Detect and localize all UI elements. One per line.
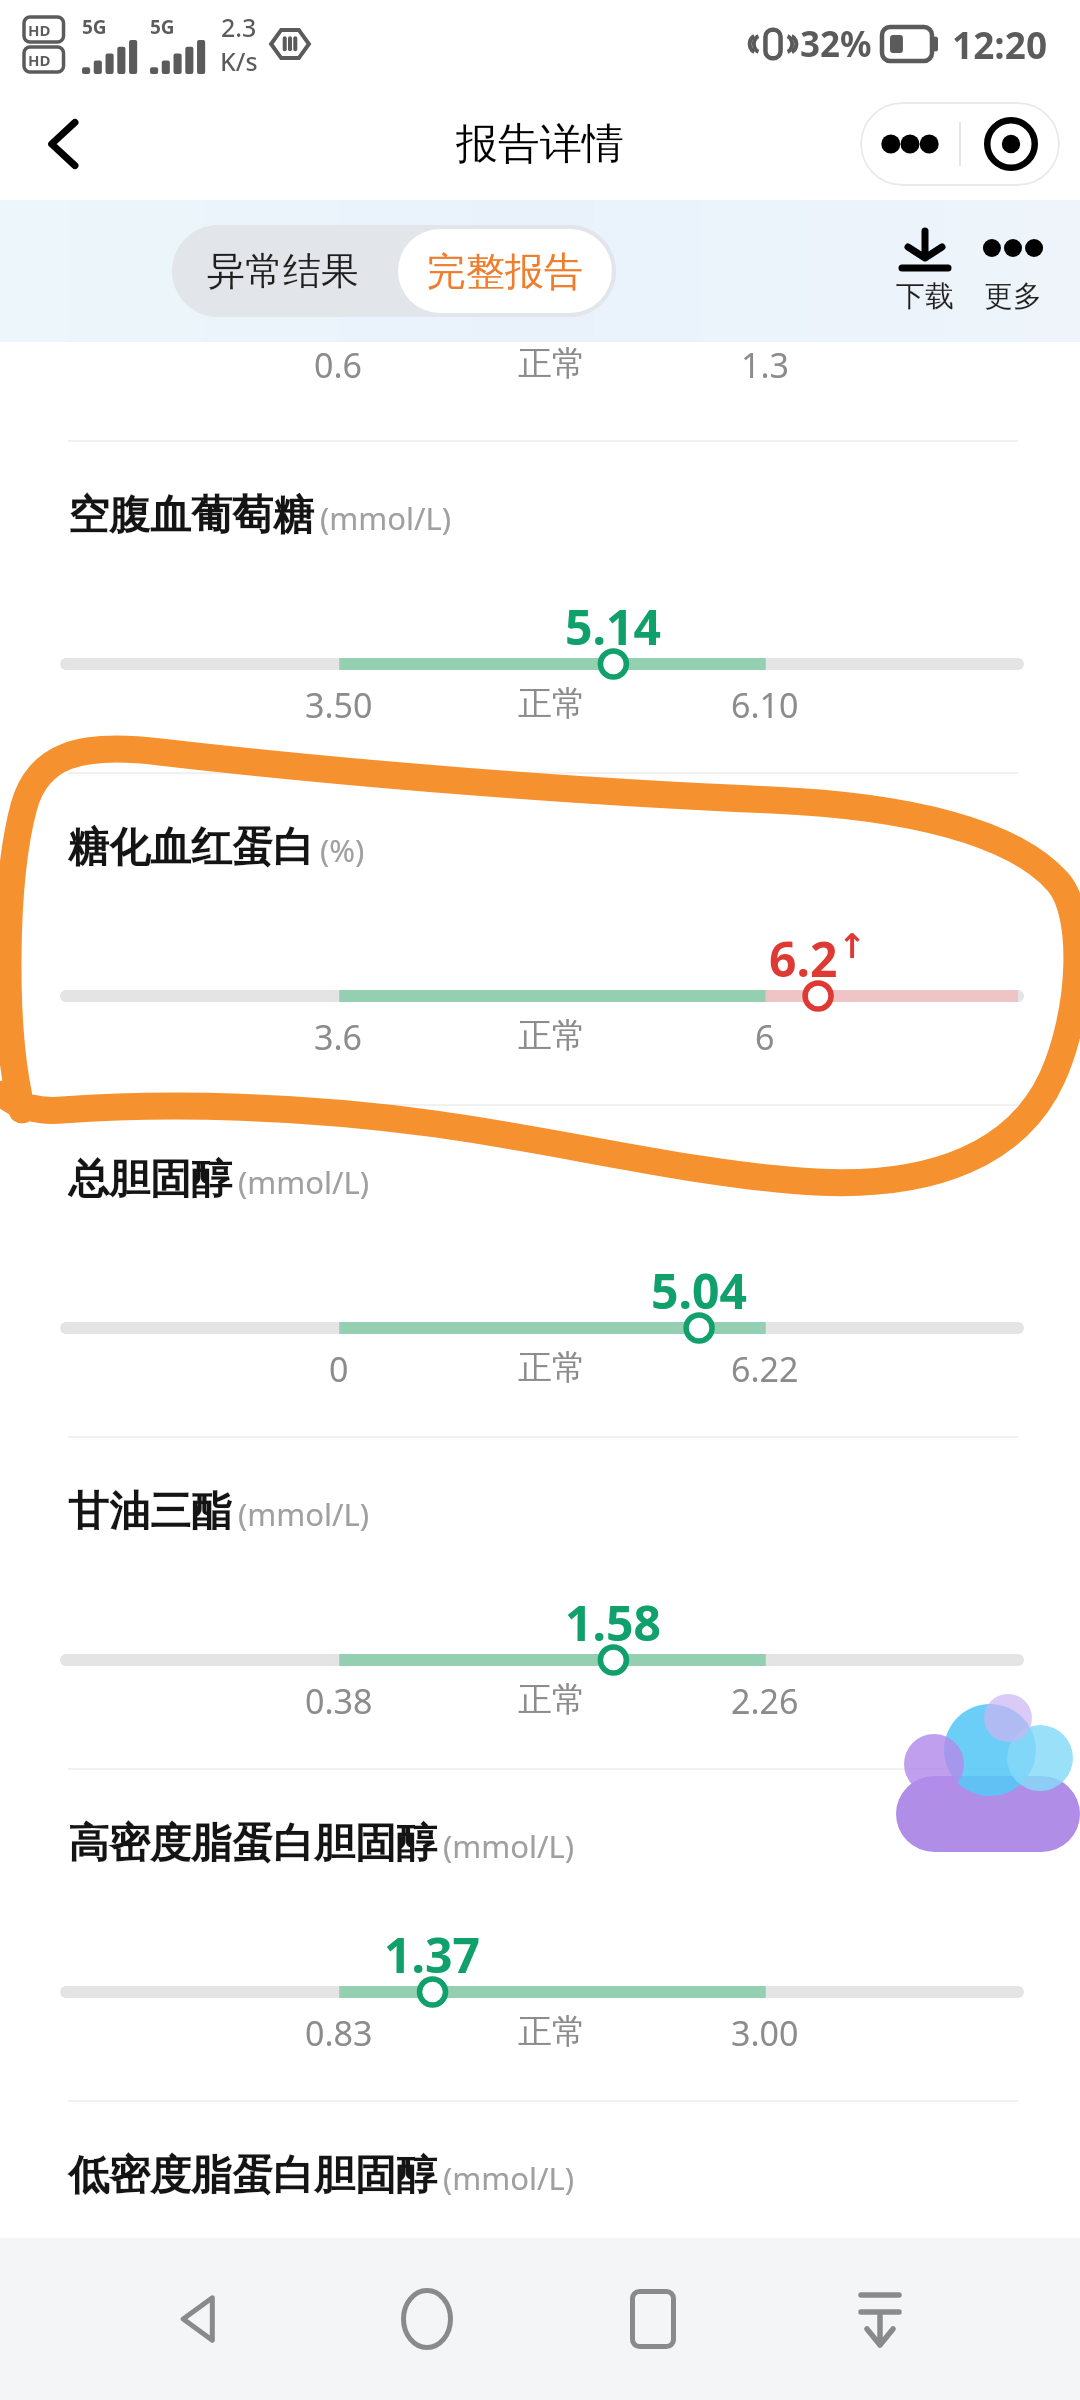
staticText: 5.14 [565,594,661,659]
staticText: 5.04 [651,1258,747,1323]
staticText: 0 [329,1346,349,1392]
button[interactable]: 总胆固醇 [0,1106,1080,1436]
button[interactable]: 下载 [880,228,970,315]
staticText: 0.83 [305,2010,373,2056]
staticText: (mmol/L) [238,1493,370,1535]
button[interactable]: 完整报告 [398,229,612,313]
staticText: 更多 [984,278,1042,315]
staticText: 异常结果 [207,247,359,295]
staticText: 2.3 [221,10,257,44]
staticText: 6 [755,1014,775,1060]
staticText: 正常 [518,1678,586,1721]
staticText: 下载 [896,278,954,315]
staticText: 正常 [518,2010,586,2053]
staticText: 糖化血红蛋白 [68,822,314,874]
staticText: 低密度脂蛋白胆固醇 [68,2150,437,2202]
staticText: 3.00 [731,2010,799,2056]
staticText: 0.6 [314,342,363,388]
staticText: 5G [150,14,175,40]
staticText: 3.6 [314,1014,363,1060]
staticText: K/s [220,44,258,78]
staticText: 5G [82,14,107,40]
staticText: (%) [320,829,365,871]
button[interactable]: Hide keyboard [830,2269,930,2369]
staticText: 报告详情 [456,118,624,171]
button[interactable]: Home [377,2269,477,2369]
staticText: (mmol/L) [320,497,452,539]
staticText: HD [28,50,51,70]
staticText: 高密度脂蛋白胆固醇 [68,1818,437,1870]
staticText: 正常 [518,1014,586,1057]
button[interactable]: Recent apps [603,2269,703,2369]
staticText: 正常 [518,682,586,725]
button[interactable]: 异常结果 [172,225,394,317]
staticText: ↑ [838,926,867,966]
button[interactable]: Back [18,104,98,184]
button[interactable]: Close [961,102,1060,186]
button[interactable]: 空腹血葡萄糖 [0,442,1080,772]
other: Battery [882,27,940,61]
staticText: 完整报告 [427,247,583,296]
staticText: 1.3 [741,342,790,388]
staticText: 32% [800,20,872,68]
other: Vibrate [752,23,794,65]
button[interactable]: 糖化血红蛋白 [0,774,1080,1104]
staticText: 3.50 [305,682,373,728]
button[interactable]: More options [860,102,959,186]
staticText: 2.26 [731,1678,799,1724]
button[interactable]: Back [150,2269,250,2369]
staticText: HD [28,20,51,40]
staticText: 1.37 [384,1922,480,1987]
button[interactable]: 高密度脂蛋白胆固醇 [0,1770,1080,2100]
staticText: 6.22 [731,1346,799,1392]
staticText: (mmol/L) [443,1825,575,1867]
staticText: 0.38 [305,1678,373,1724]
button[interactable]: 甘油三酯 [0,1438,1080,1768]
staticText: 空腹血葡萄糖 [68,490,314,542]
button[interactable]: 更多 [970,228,1056,315]
staticText: 1.58 [565,1590,661,1655]
staticText: (mmol/L) [443,2157,575,2199]
staticText: (mmol/L) [238,1161,370,1203]
staticText: 甘油三酯 [68,1486,232,1538]
staticText: 正常 [518,342,586,385]
staticText: 正常 [518,1346,586,1389]
staticText: 6.10 [731,682,799,728]
staticText: 12:20 [952,19,1048,69]
staticText: 6.2 [769,926,838,991]
button[interactable]: 低密度脂蛋白胆固醇 [0,2150,1080,2202]
staticText: 总胆固醇 [68,1154,232,1206]
